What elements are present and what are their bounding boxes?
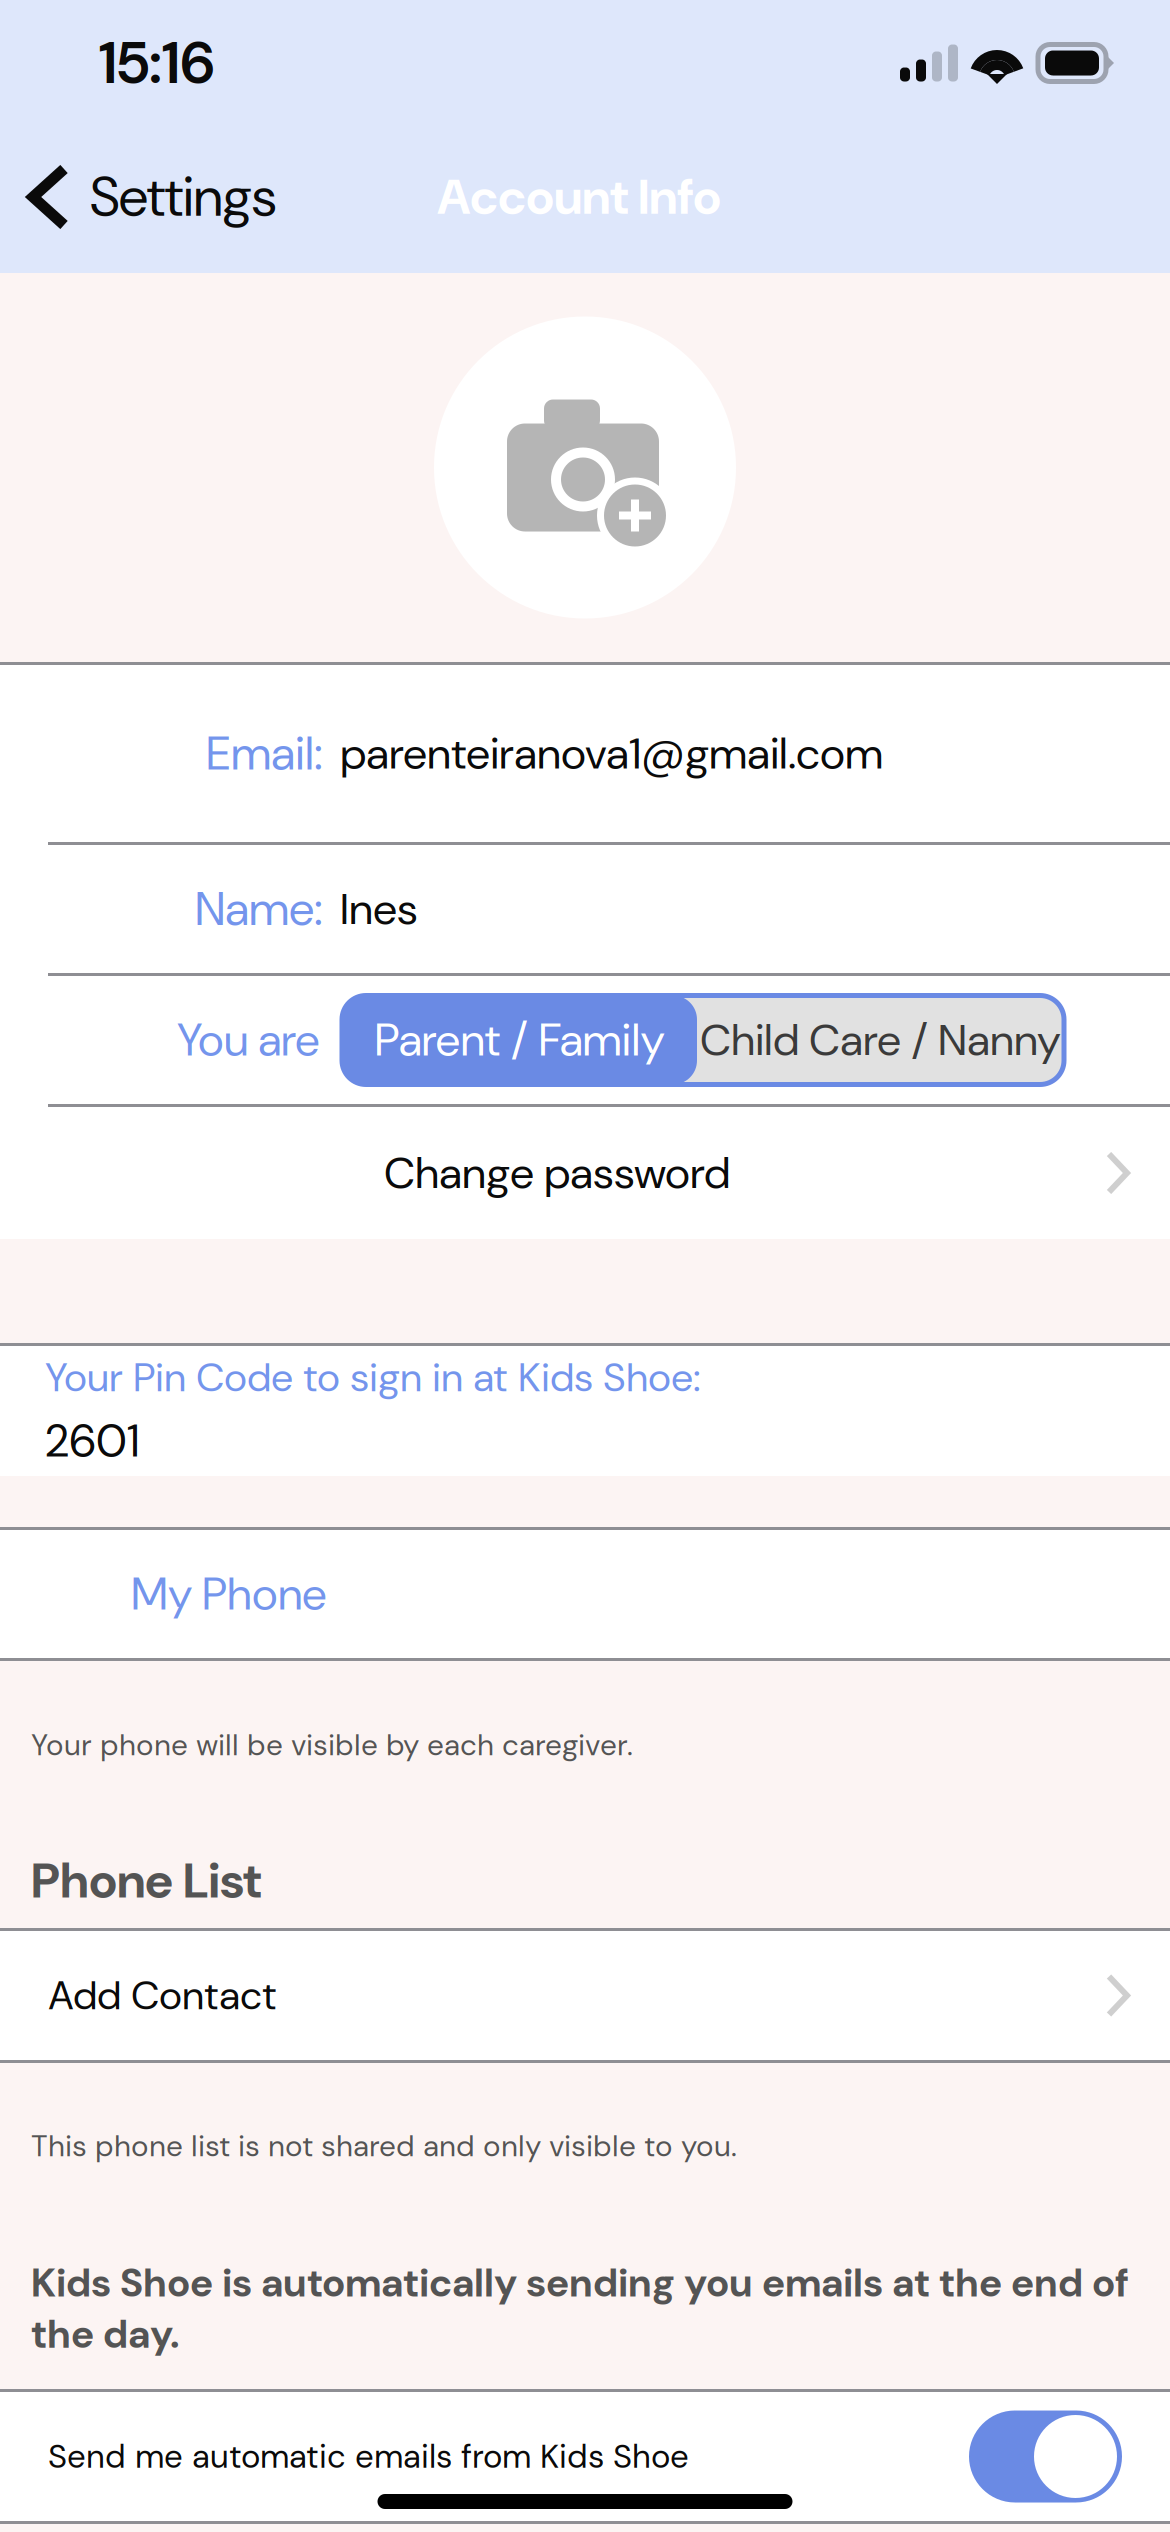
staticText: Email: xyxy=(206,723,323,784)
staticText: Add Contact xyxy=(48,1969,277,2022)
staticText: Settings xyxy=(90,161,276,233)
button[interactable]: Settings xyxy=(0,149,330,245)
staticText: Account Info xyxy=(437,165,721,229)
button[interactable]: Send me automatic emails from Kids Shoe xyxy=(969,2410,1122,2502)
staticText: 2601 xyxy=(45,1411,139,1470)
staticText: This phone list is not shared and only v… xyxy=(31,2127,737,2165)
button[interactable]: Change password xyxy=(0,1107,1170,1239)
staticText: Name: xyxy=(195,879,323,939)
staticText: My Phone xyxy=(131,1564,327,1623)
staticText: Send me automatic emails from Kids Shoe xyxy=(48,2435,689,2478)
staticText: Child Care / Nanny xyxy=(700,1011,1061,1069)
button[interactable]: Parent / Family xyxy=(342,995,697,1084)
staticText: 15:16 xyxy=(99,25,214,101)
staticText: Change password xyxy=(384,1144,730,1202)
staticText: parenteiranova1@gmail.com xyxy=(340,725,883,782)
button[interactable]: Add Contact xyxy=(0,1928,1170,2060)
staticText: Parent / Family xyxy=(374,1010,664,1069)
staticText: Kids Shoe is automatically sending you e… xyxy=(31,2257,1129,2360)
staticText: Ines xyxy=(340,880,418,938)
staticText: Phone List xyxy=(31,1848,261,1913)
staticText: Your Pin Code to sign in at Kids Shoe: xyxy=(45,1351,701,1403)
staticText: Your phone will be visible by each careg… xyxy=(31,1726,633,1764)
button[interactable]: Child Care / Nanny xyxy=(697,995,1064,1084)
staticText: You are xyxy=(177,1010,320,1069)
